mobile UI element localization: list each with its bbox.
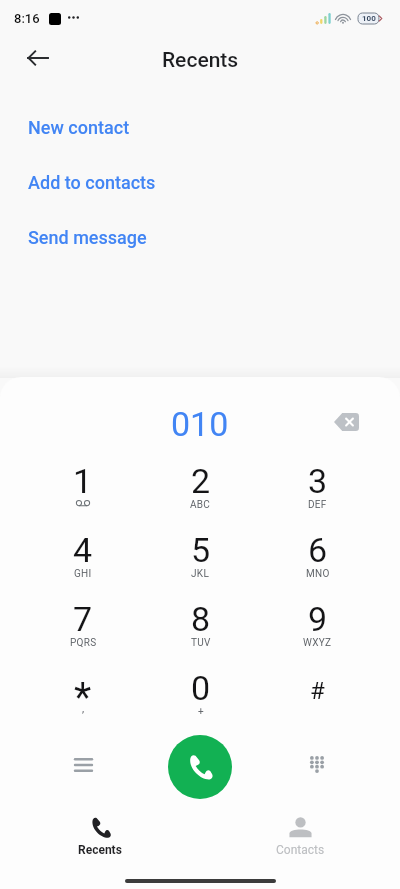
button[interactable]: Send message [0, 220, 400, 254]
staticText: MNO [306, 568, 330, 580]
staticText: Recents [162, 48, 239, 73]
staticText: Add to contacts [28, 172, 156, 193]
button[interactable]: Add to contacts [0, 165, 400, 199]
staticText: DEF [308, 499, 327, 511]
staticText: WXYZ [303, 637, 332, 649]
staticText: 3 [308, 461, 328, 501]
staticText: 9 [308, 599, 328, 639]
button[interactable]: 3 [259, 461, 376, 530]
button[interactable]: 1 [24, 461, 142, 530]
button[interactable]: # [259, 668, 376, 737]
staticText: Send message [28, 227, 147, 248]
staticText: TUV [191, 637, 211, 649]
button[interactable]: 6 [259, 530, 376, 599]
staticText: 0 [191, 668, 211, 708]
button[interactable]: Menu [63, 745, 103, 785]
button[interactable]: 0 [142, 668, 259, 737]
staticText: 1 [73, 461, 93, 501]
staticText: + [198, 706, 204, 718]
staticText: 010 [171, 404, 229, 444]
staticText: 100 [362, 14, 376, 23]
staticText: # [310, 677, 325, 705]
button[interactable]: 9 [259, 599, 376, 668]
staticText: PQRS [70, 637, 97, 649]
button[interactable]: Back [20, 40, 56, 76]
staticText: 8 [191, 599, 211, 639]
button[interactable]: New contact [0, 110, 400, 144]
staticText: Recents [78, 843, 122, 857]
staticText: * [74, 674, 92, 721]
button[interactable]: Recents [0, 811, 200, 857]
staticText: 4 [73, 530, 93, 570]
button[interactable]: Dialpad [297, 744, 337, 784]
staticText: Contacts [276, 843, 325, 857]
button[interactable]: Contacts [200, 811, 400, 857]
staticText: ABC [190, 499, 211, 511]
button[interactable]: * [24, 668, 142, 737]
staticText: 8:16 [14, 11, 40, 26]
staticText: GHI [74, 568, 92, 580]
staticText: 5 [191, 530, 211, 570]
button[interactable]: 5 [142, 530, 259, 599]
staticText: 7 [73, 599, 93, 639]
staticText: JKL [191, 568, 210, 580]
staticText: New contact [28, 117, 130, 138]
staticText: 6 [308, 530, 328, 570]
button[interactable]: 4 [24, 530, 142, 599]
button[interactable]: Call [168, 735, 232, 799]
staticText: 2 [191, 461, 211, 501]
button[interactable]: Backspace [326, 402, 366, 442]
staticText: , [82, 702, 85, 715]
button[interactable]: 8 [142, 599, 259, 668]
button[interactable]: 2 [142, 461, 259, 530]
button[interactable]: 7 [24, 599, 142, 668]
